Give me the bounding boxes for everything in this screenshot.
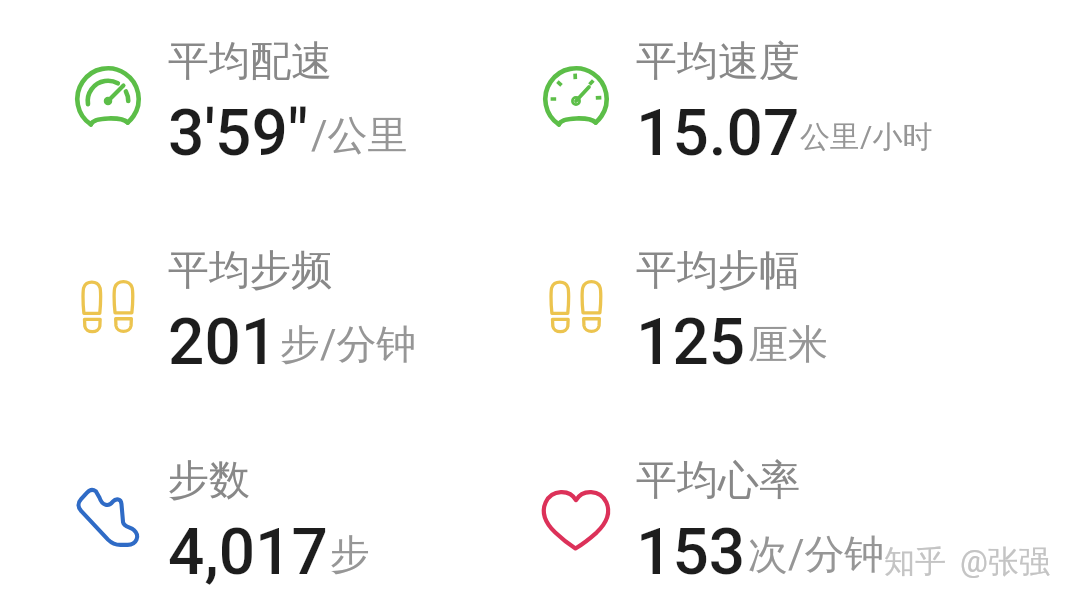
button[interactable]: 步数 bbox=[168, 455, 370, 590]
staticText: 平均速度 bbox=[636, 36, 800, 88]
other: Average heart rate bbox=[543, 486, 609, 552]
button[interactable]: 平均心率 bbox=[636, 455, 885, 590]
staticText: 平均心率 bbox=[636, 455, 800, 507]
staticText: /公里 bbox=[311, 110, 408, 160]
other: Average stride bbox=[543, 276, 609, 342]
staticText: 125 bbox=[636, 305, 746, 380]
button[interactable]: 平均速度 bbox=[636, 36, 933, 171]
staticText: 步 bbox=[330, 529, 370, 579]
staticText: 平均步幅 bbox=[636, 245, 800, 297]
staticText: 知乎 bbox=[884, 542, 946, 581]
staticText: 3'59" bbox=[168, 96, 309, 171]
button[interactable]: 平均步频 bbox=[168, 245, 417, 380]
other: Average cadence bbox=[75, 276, 141, 342]
button[interactable]: 平均配速 bbox=[168, 36, 408, 171]
other: Steps bbox=[75, 486, 141, 552]
staticText: 201 bbox=[168, 305, 278, 380]
other: Average pace bbox=[75, 66, 141, 132]
staticText: 步数 bbox=[168, 455, 250, 507]
staticText: 步/分钟 bbox=[280, 319, 417, 369]
staticText: 次/分钟 bbox=[748, 529, 885, 579]
staticText: 公里/小时 bbox=[800, 118, 933, 156]
staticText: 15.07 bbox=[636, 96, 800, 171]
other: Average speed bbox=[543, 66, 609, 132]
staticText: 平均步频 bbox=[168, 245, 332, 297]
staticText: 4,017 bbox=[168, 515, 328, 590]
staticText: 厘米 bbox=[748, 319, 828, 369]
staticText: 平均配速 bbox=[168, 36, 332, 88]
staticText: 153 bbox=[636, 515, 746, 590]
button[interactable]: 平均步幅 bbox=[636, 245, 828, 380]
staticText: @张强 bbox=[960, 542, 1050, 581]
